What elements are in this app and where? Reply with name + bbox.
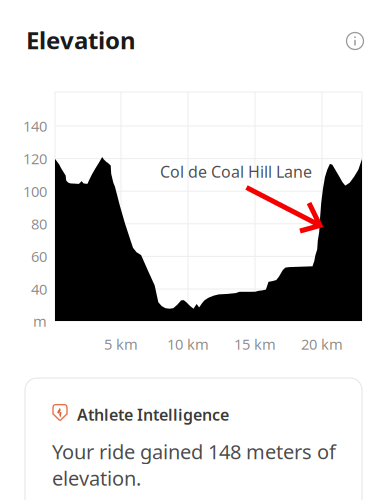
- staticText: 5 km: [104, 334, 138, 354]
- staticText: 60: [31, 247, 47, 266]
- staticText: 15 km: [234, 334, 276, 354]
- staticText: Your ride gained 148 meters of: [52, 438, 336, 465]
- staticText: elevation.: [52, 465, 141, 491]
- staticText: Athlete Intelligence: [77, 404, 229, 425]
- staticText: Col de Coal Hill Lane: [160, 161, 312, 182]
- staticText: 20 km: [301, 334, 343, 354]
- staticText: m: [33, 311, 47, 331]
- staticText: 100: [23, 181, 47, 201]
- staticText: 40: [31, 279, 47, 299]
- staticText: Elevation: [26, 24, 136, 56]
- staticText: 80: [31, 214, 47, 234]
- button[interactable]: Info: [338, 24, 372, 58]
- staticText: 140: [23, 116, 47, 136]
- staticText: 10 km: [167, 334, 209, 354]
- staticText: 120: [23, 149, 47, 168]
